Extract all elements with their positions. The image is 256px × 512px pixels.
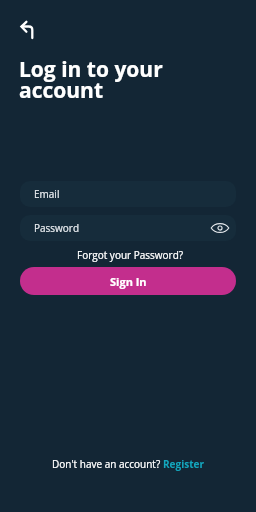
staticText: Forgot your Password?: [77, 248, 184, 262]
staticText: Log in to your account: [19, 55, 184, 105]
staticText: Don't have an account?: [52, 457, 163, 471]
button[interactable]: Email: [20, 181, 236, 207]
button[interactable]: Sign In: [20, 267, 236, 295]
button[interactable]: Register: [163, 457, 204, 471]
staticText: Sign In: [110, 274, 147, 289]
button[interactable]: Back: [16, 16, 40, 40]
button[interactable]: Forgot your Password?: [71, 246, 190, 264]
button[interactable]: Show password: [210, 218, 230, 238]
button[interactable]: Password: [20, 215, 236, 241]
staticText: Password: [34, 221, 80, 235]
staticText: Register: [163, 457, 204, 471]
staticText: Email: [34, 187, 60, 201]
